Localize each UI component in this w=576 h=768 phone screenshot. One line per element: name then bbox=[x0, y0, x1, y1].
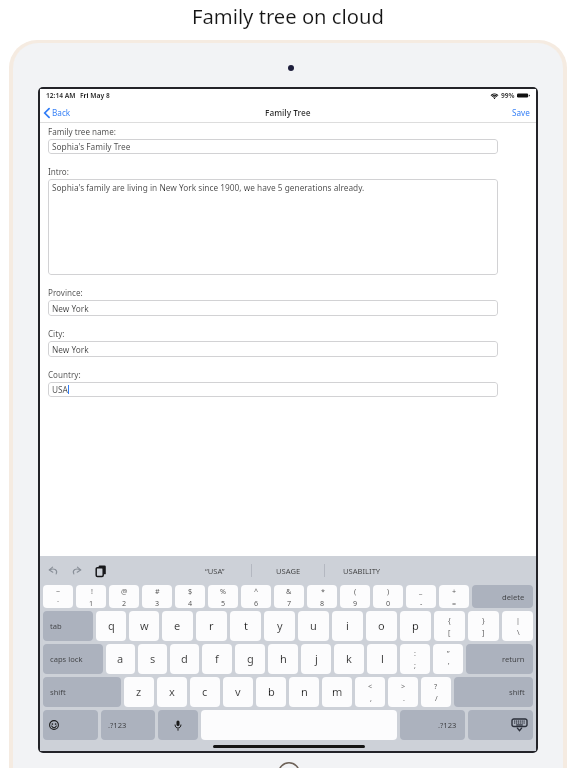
button[interactable]: _ bbox=[406, 585, 436, 608]
button[interactable]: a bbox=[106, 644, 135, 674]
button[interactable]: ( bbox=[340, 585, 370, 608]
staticText: caps lock bbox=[50, 654, 83, 664]
button[interactable]: tab bbox=[43, 611, 93, 641]
staticText: } bbox=[482, 615, 485, 625]
button[interactable]: USABILITY bbox=[325, 556, 398, 585]
button[interactable]: j bbox=[301, 644, 331, 674]
button[interactable]: k bbox=[334, 644, 364, 674]
button[interactable]: ? bbox=[421, 677, 451, 707]
button[interactable]: x bbox=[157, 677, 187, 707]
button[interactable]: .?123 bbox=[400, 710, 465, 740]
button[interactable]: & bbox=[274, 585, 304, 608]
staticText: q bbox=[108, 618, 115, 633]
staticText: ` bbox=[57, 598, 60, 608]
staticText: @ bbox=[121, 586, 128, 596]
button[interactable]: h bbox=[268, 644, 298, 674]
button[interactable]: < bbox=[355, 677, 385, 707]
button[interactable]: New York bbox=[52, 341, 494, 357]
button[interactable]: ” bbox=[433, 644, 463, 674]
button[interactable]: o bbox=[366, 611, 397, 641]
button[interactable]: Undo bbox=[48, 565, 58, 577]
button[interactable]: b bbox=[256, 677, 286, 707]
staticText: 3 bbox=[155, 598, 160, 608]
button[interactable]: * bbox=[307, 585, 337, 608]
button[interactable]: @ bbox=[109, 585, 139, 608]
button[interactable]: s bbox=[138, 644, 167, 674]
staticText: c bbox=[202, 684, 208, 699]
button[interactable]: p bbox=[400, 611, 431, 641]
button[interactable]: | bbox=[502, 611, 533, 641]
button[interactable]: r bbox=[196, 611, 227, 641]
button[interactable]: % bbox=[208, 585, 238, 608]
button[interactable]: Sophia's family are living in New York s… bbox=[52, 182, 494, 275]
button[interactable]: n bbox=[289, 677, 319, 707]
staticText: - bbox=[420, 598, 423, 608]
staticText: x bbox=[169, 684, 175, 699]
staticText: .?123 bbox=[108, 720, 127, 730]
button[interactable]: d bbox=[170, 644, 199, 674]
staticText: City: bbox=[48, 328, 65, 339]
staticText: tab bbox=[50, 621, 62, 631]
staticText: \ bbox=[517, 627, 520, 637]
button[interactable]: l bbox=[367, 644, 397, 674]
button[interactable]: .?123 bbox=[101, 710, 155, 740]
button[interactable]: v bbox=[223, 677, 253, 707]
button[interactable]: i bbox=[332, 611, 363, 641]
button[interactable]: Emoji bbox=[43, 710, 98, 740]
button[interactable]: e bbox=[162, 611, 193, 641]
button[interactable]: ^ bbox=[241, 585, 271, 608]
button[interactable]: g bbox=[235, 644, 265, 674]
button[interactable]: > bbox=[388, 677, 418, 707]
button[interactable]: Redo bbox=[72, 565, 82, 577]
staticText: . bbox=[403, 693, 405, 703]
button[interactable]: z bbox=[124, 677, 154, 707]
button[interactable]: ~ bbox=[43, 585, 73, 608]
button[interactable]: Save bbox=[512, 107, 530, 118]
staticText: y bbox=[277, 618, 283, 633]
button[interactable]: { bbox=[434, 611, 465, 641]
button[interactable]: delete bbox=[472, 585, 533, 608]
button[interactable]: shift bbox=[43, 677, 121, 707]
button[interactable]: f bbox=[202, 644, 232, 674]
staticText: s bbox=[150, 651, 156, 666]
button[interactable]: Paste bbox=[96, 565, 106, 577]
button[interactable]: Dictate bbox=[158, 710, 198, 740]
staticText: 8 bbox=[320, 598, 325, 608]
button[interactable]: # bbox=[142, 585, 172, 608]
staticText: ! bbox=[91, 586, 93, 596]
button[interactable]: “USA” bbox=[178, 556, 251, 585]
button[interactable]: u bbox=[298, 611, 329, 641]
button[interactable]: } bbox=[468, 611, 499, 641]
button[interactable]: t bbox=[230, 611, 261, 641]
staticText: f bbox=[215, 651, 219, 666]
button[interactable]: ! bbox=[76, 585, 106, 608]
staticText: l bbox=[381, 651, 384, 666]
staticText: < bbox=[368, 681, 373, 691]
staticText: Fri May 8 bbox=[80, 91, 110, 100]
button[interactable]: + bbox=[439, 585, 469, 608]
button[interactable]: w bbox=[129, 611, 159, 641]
button[interactable]: caps lock bbox=[43, 644, 103, 674]
staticText: o bbox=[378, 618, 385, 633]
button[interactable]: New York bbox=[52, 300, 494, 316]
button[interactable]: USA bbox=[52, 382, 494, 397]
button[interactable]: q bbox=[96, 611, 126, 641]
staticText: shift bbox=[509, 687, 525, 697]
button[interactable]: y bbox=[264, 611, 295, 641]
button[interactable]: m bbox=[322, 677, 352, 707]
button[interactable]: shift bbox=[454, 677, 533, 707]
button[interactable]: : bbox=[400, 644, 430, 674]
button[interactable]: Back bbox=[44, 107, 71, 118]
button[interactable]: $ bbox=[175, 585, 205, 608]
staticText: { bbox=[448, 615, 451, 625]
button[interactable]: ) bbox=[373, 585, 403, 608]
button[interactable]: Hide keyboard bbox=[468, 710, 533, 740]
button[interactable]: USAGE bbox=[252, 556, 324, 585]
button[interactable]: c bbox=[190, 677, 220, 707]
button[interactable]: Sophia's Family Tree bbox=[52, 139, 494, 154]
staticText: Family Tree bbox=[265, 107, 311, 118]
staticText: ) bbox=[387, 586, 390, 596]
button[interactable]: return bbox=[466, 644, 533, 674]
staticText: $ bbox=[188, 586, 193, 596]
